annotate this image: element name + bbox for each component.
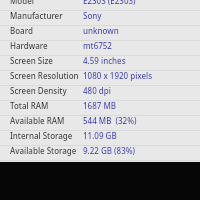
- staticText: Available RAM: [10, 115, 65, 126]
- button[interactable]: Hardware: [0, 40, 200, 55]
- staticText: 9.22 GB (83%): [83, 145, 136, 156]
- button[interactable]: Total RAM: [0, 100, 200, 115]
- button[interactable]: Available RAM: [0, 115, 200, 130]
- staticText: Screen Resolution: [10, 70, 79, 81]
- staticText: mt6752: [83, 40, 112, 51]
- staticText: Screen Density: [10, 85, 67, 96]
- button[interactable]: Screen Size: [0, 55, 200, 70]
- button[interactable]: Available Storage: [0, 145, 200, 160]
- staticText: 1080 x 1920 pixels: [83, 70, 153, 81]
- staticText: 1687 MB: [83, 100, 116, 111]
- button[interactable]: Screen Resolution: [0, 70, 200, 85]
- staticText: 544 MB (32%): [83, 115, 137, 126]
- staticText: Model: [10, 0, 34, 5]
- staticText: Board: [10, 25, 33, 36]
- staticText: Available Storage: [10, 145, 77, 156]
- staticText: Internal Storage: [10, 130, 73, 141]
- staticText: Hardware: [10, 40, 48, 51]
- staticText: Total RAM: [10, 100, 49, 111]
- staticText: 11.09 GB: [83, 130, 117, 141]
- staticText: Sony: [83, 10, 102, 21]
- staticText: E2303 (E2303): [83, 0, 136, 5]
- staticText: 4.59 inches: [83, 55, 126, 66]
- button[interactable]: Manufacturer: [0, 10, 200, 25]
- staticText: unknown: [83, 25, 119, 36]
- button[interactable]: Screen Density: [0, 85, 200, 100]
- staticText: 480 dpi: [83, 85, 111, 96]
- staticText: Manufacturer: [10, 10, 63, 21]
- button[interactable]: Board: [0, 25, 200, 40]
- button[interactable]: Internal Storage: [0, 130, 200, 145]
- staticText: Screen Size: [10, 55, 53, 66]
